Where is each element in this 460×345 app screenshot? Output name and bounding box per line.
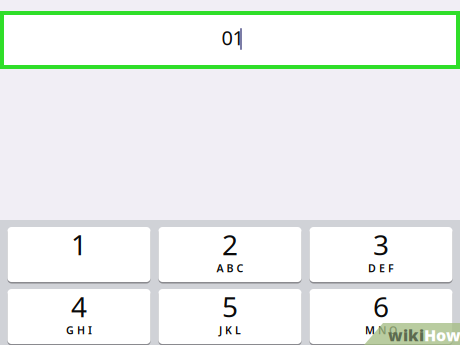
staticText: M N O [365,323,397,337]
staticText: 1 [71,226,87,263]
button[interactable]: 01 [0,11,460,69]
button[interactable]: 3 DEF [309,227,452,282]
staticText: How [424,324,460,345]
staticText: A B C [216,261,243,275]
staticText: 2 [222,226,238,263]
staticText: 4 [71,288,87,325]
staticText: G H I [66,323,92,337]
button[interactable]: 1 [7,227,150,282]
staticText: D E F [368,261,394,275]
staticText: wiki [388,324,424,345]
staticText: 3 [373,226,389,263]
staticText: 6 [373,288,389,325]
staticText: 5 [222,288,238,325]
staticText: 01 [221,24,243,51]
button[interactable]: 6 MNO [309,289,452,344]
button[interactable]: 4 GHI [7,289,150,344]
staticText: J K L [219,323,241,337]
button[interactable]: 5 JKL [158,289,301,344]
button[interactable]: 2 ABC [158,227,301,282]
